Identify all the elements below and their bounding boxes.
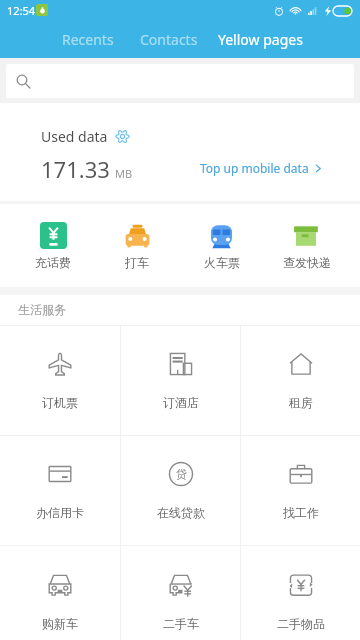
staticText: Contacts (140, 30, 198, 49)
button[interactable]: 充话费 (11, 204, 95, 287)
button[interactable]: Contacts (134, 22, 204, 57)
button[interactable]: 订机票 (0, 326, 120, 435)
button[interactable]: 办信用卡 (0, 436, 120, 545)
button[interactable]: 查发快递 (264, 204, 349, 287)
button[interactable]: Search (6, 64, 354, 98)
staticText: 打车 (125, 255, 149, 270)
button[interactable]: 打车 (95, 204, 179, 287)
staticText: 二手车 (163, 616, 199, 631)
button[interactable]: 租房 (241, 326, 360, 435)
staticText: 办信用卡 (36, 505, 84, 520)
staticText: 充话费 (35, 255, 71, 270)
staticText: Yellow pages (218, 30, 303, 49)
staticText: 生活服务 (18, 302, 66, 317)
staticText: 二手物品 (277, 616, 325, 631)
staticText: 订酒店 (163, 395, 199, 410)
button[interactable]: 找工作 (241, 436, 360, 545)
staticText: 火车票 (204, 255, 240, 270)
staticText: Recents (62, 30, 114, 49)
staticText: 贷 (176, 467, 187, 481)
staticText: 查发快递 (283, 255, 331, 270)
button[interactable]: 订酒店 (121, 326, 240, 435)
button[interactable]: 购新车 (0, 539, 120, 640)
button[interactable]: 二手车 (121, 539, 240, 640)
button[interactable]: Top up mobile data (200, 160, 323, 176)
button[interactable]: Recents (56, 22, 120, 57)
staticText: 12:54 (7, 3, 36, 18)
staticText: 购新车 (42, 616, 78, 631)
staticText: 订机票 (42, 395, 78, 410)
staticText: 找工作 (283, 505, 319, 520)
staticText: 在线贷款 (157, 505, 205, 520)
staticText: Used data (41, 127, 108, 146)
button[interactable]: Used data (41, 127, 130, 146)
other: Data usage settings (115, 129, 130, 144)
staticText: MB (115, 166, 133, 181)
button[interactable]: 二手物品 (241, 539, 360, 640)
staticText: 租房 (289, 395, 313, 410)
staticText: 171.33 (41, 154, 110, 184)
button[interactable]: 贷 (121, 436, 240, 545)
button[interactable]: Yellow pages (212, 22, 309, 57)
staticText: Top up mobile data (200, 160, 309, 176)
button[interactable]: 火车票 (179, 204, 264, 287)
